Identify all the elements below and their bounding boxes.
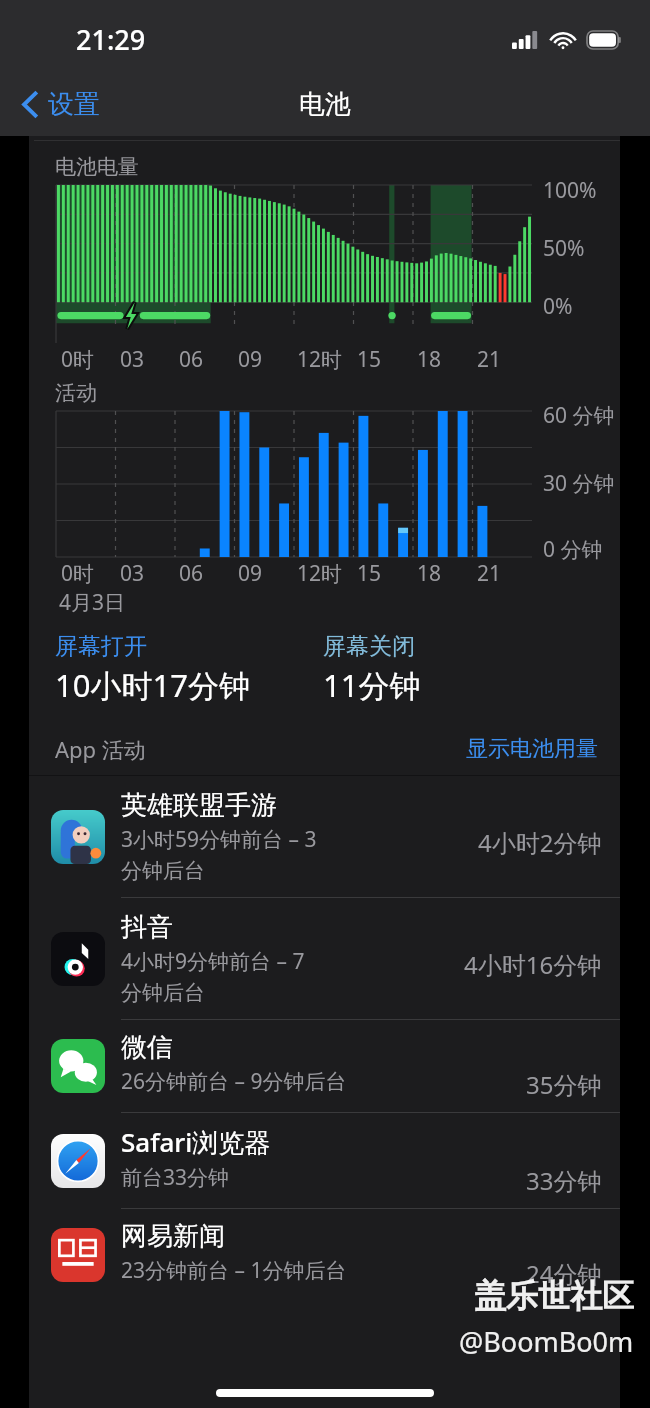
staticText: 显示电池用量 [466, 735, 598, 763]
staticText: 电池电量 [55, 154, 139, 180]
staticText: 4小时9分钟前台 – 7 分钟后台 [121, 947, 458, 1006]
staticText: 06 [179, 559, 204, 588]
staticText: 30 分钟 [543, 469, 615, 498]
button[interactable]: 英雄联盟手游 [29, 776, 620, 898]
staticText: 03 [120, 559, 145, 588]
staticText: 微信 [121, 1031, 173, 1064]
staticText: 10小时17分钟 [55, 664, 250, 706]
staticText: 21 [477, 559, 502, 588]
staticText: 33分钟 [526, 1164, 602, 1197]
staticText: 09 [238, 559, 263, 588]
staticText: 06 [179, 345, 204, 374]
staticText: 盖乐世社区 [474, 1276, 634, 1316]
button[interactable]: 抖音 [29, 898, 620, 1020]
button[interactable]: 微信 [29, 1020, 620, 1113]
staticText: Safari浏览器 [121, 1124, 271, 1160]
staticText: 3小时59分钟前台 – 3 分钟后台 [121, 825, 472, 884]
staticText: 网易新闻 [121, 1220, 225, 1253]
staticText: 100% [543, 176, 597, 205]
staticText: @BoomBo0m [459, 1323, 634, 1360]
staticText: 屏幕关闭 [323, 632, 415, 661]
staticText: 12时 [297, 559, 343, 588]
staticText: 11分钟 [323, 664, 421, 706]
staticText: 0时 [61, 559, 95, 588]
staticText: 4小时2分钟 [478, 826, 602, 859]
staticText: 21:29 [76, 21, 146, 58]
staticText: 电池 [299, 88, 351, 121]
button[interactable]: Safari浏览器 [29, 1113, 620, 1209]
staticText: 0时 [61, 345, 95, 374]
staticText: 09 [238, 345, 263, 374]
button[interactable]: 显示电池用量 [466, 735, 598, 763]
staticText: 4月3日 [59, 588, 126, 617]
staticText: 18 [417, 559, 442, 588]
staticText: 26分钟前台 – 9分钟后台 [121, 1067, 520, 1096]
button[interactable]: 屏幕打开 [55, 632, 323, 706]
button[interactable]: 设置 [16, 80, 106, 129]
staticText: 24分钟 [526, 1257, 602, 1290]
staticText: 屏幕打开 [55, 632, 147, 661]
button[interactable]: 网易新闻 [29, 1209, 620, 1301]
staticText: 英雄联盟手游 [121, 789, 277, 822]
staticText: 18 [417, 345, 442, 374]
staticText: 前台33分钟 [121, 1163, 520, 1192]
staticText: 设置 [48, 88, 100, 121]
staticText: App 活动 [55, 734, 466, 764]
staticText: 15 [357, 345, 382, 374]
staticText: 0% [543, 292, 573, 321]
staticText: 活动 [55, 380, 97, 406]
staticText: 03 [120, 345, 145, 374]
staticText: 60 分钟 [543, 401, 615, 430]
staticText: 抖音 [121, 911, 173, 944]
staticText: 21 [477, 345, 502, 374]
staticText: 0 分钟 [543, 535, 603, 564]
staticText: 23分钟前台 – 1分钟后台 [121, 1256, 520, 1285]
staticText: 35分钟 [526, 1068, 602, 1101]
button[interactable]: 屏幕关闭 [323, 632, 421, 706]
staticText: 4小时16分钟 [464, 948, 602, 981]
staticText: 15 [357, 559, 382, 588]
staticText: 12时 [297, 345, 343, 374]
staticText: 50% [543, 234, 585, 263]
